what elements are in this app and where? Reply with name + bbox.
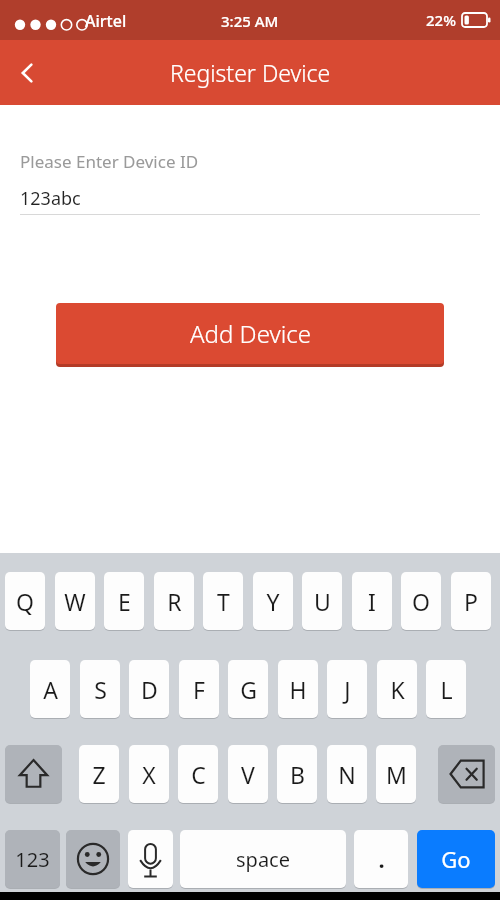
button[interactable]: V: [228, 745, 268, 803]
button[interactable]: X: [129, 745, 169, 803]
button[interactable]: T: [203, 572, 243, 630]
button[interactable]: Back: [0, 45, 56, 101]
staticText: Please Enter Device ID: [20, 150, 199, 173]
button[interactable]: Y: [253, 572, 293, 630]
button[interactable]: W: [55, 572, 95, 630]
button[interactable]: P: [451, 572, 491, 630]
staticText: N: [338, 759, 356, 790]
staticText: O: [412, 586, 430, 617]
staticText: 3:25 AM: [221, 11, 279, 31]
staticText: D: [141, 674, 158, 705]
staticText: L: [440, 674, 453, 705]
staticText: Airtel: [85, 10, 127, 32]
staticText: Register Device: [170, 57, 331, 88]
button[interactable]: H: [278, 660, 318, 718]
button[interactable]: N: [327, 745, 367, 803]
button[interactable]: Shift: [5, 745, 62, 803]
staticText: F: [193, 674, 205, 705]
button[interactable]: F: [179, 660, 219, 718]
staticText: 123: [15, 846, 50, 873]
staticText: I: [368, 586, 376, 617]
staticText: M: [386, 759, 407, 790]
staticText: W: [64, 586, 86, 617]
staticText: E: [118, 586, 131, 617]
staticText: A: [43, 674, 58, 705]
staticText: Z: [92, 759, 106, 790]
button[interactable]: I: [352, 572, 392, 630]
button[interactable]: .: [354, 830, 408, 888]
button[interactable]: R: [154, 572, 194, 630]
button[interactable]: Go: [417, 830, 495, 888]
button[interactable]: D: [129, 660, 169, 718]
staticText: U: [314, 586, 331, 617]
staticText: S: [94, 674, 107, 705]
button[interactable]: space: [180, 830, 346, 888]
button[interactable]: Z: [79, 745, 119, 803]
button[interactable]: C: [178, 745, 218, 803]
staticText: .: [378, 844, 385, 874]
staticText: C: [191, 759, 206, 790]
button[interactable]: K: [377, 660, 417, 718]
button[interactable]: S: [80, 660, 120, 718]
button[interactable]: B: [277, 745, 317, 803]
staticText: space: [236, 846, 290, 873]
staticText: K: [390, 674, 405, 705]
staticText: H: [289, 674, 307, 705]
button[interactable]: J: [327, 660, 367, 718]
button[interactable]: G: [228, 660, 268, 718]
button[interactable]: O: [401, 572, 441, 630]
staticText: Go: [441, 844, 471, 874]
button[interactable]: Q: [5, 572, 45, 630]
staticText: G: [240, 674, 257, 705]
button[interactable]: Backspace: [438, 745, 495, 803]
staticText: X: [142, 759, 156, 790]
button[interactable]: U: [302, 572, 342, 630]
staticText: Y: [266, 586, 280, 617]
button[interactable]: M: [376, 745, 416, 803]
staticText: V: [241, 759, 255, 790]
button[interactable]: A: [30, 660, 70, 718]
staticText: Add Device: [190, 317, 311, 350]
button[interactable]: L: [426, 660, 466, 718]
staticText: 22%: [426, 10, 456, 30]
button[interactable]: Voice input: [128, 830, 173, 888]
staticText: 123abc: [20, 186, 81, 211]
button[interactable]: Add Device: [56, 303, 444, 364]
staticText: Q: [16, 586, 34, 617]
staticText: B: [290, 759, 305, 790]
staticText: P: [464, 586, 478, 617]
button[interactable]: 123abc: [20, 185, 480, 211]
staticText: T: [217, 586, 230, 617]
button[interactable]: Emoji: [66, 830, 120, 888]
button[interactable]: E: [104, 572, 144, 630]
button[interactable]: 123: [5, 830, 60, 888]
staticText: J: [344, 674, 351, 705]
staticText: R: [167, 586, 182, 617]
